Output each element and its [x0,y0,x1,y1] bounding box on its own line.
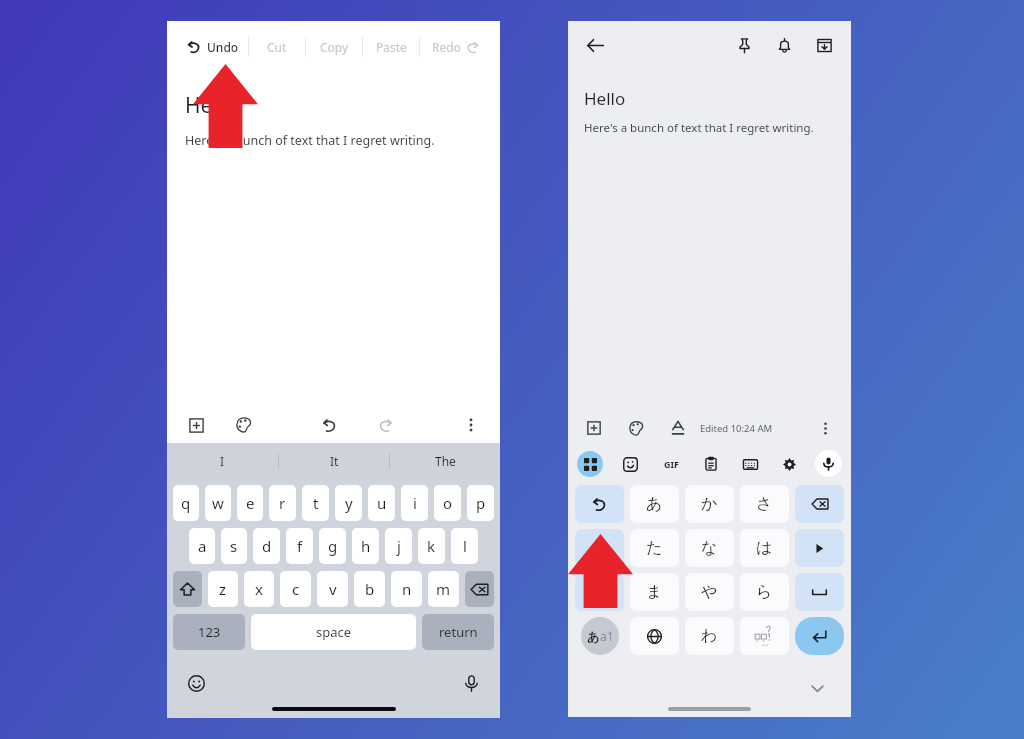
button[interactable] [575,485,624,523]
button[interactable]: GIF [657,450,685,478]
button[interactable]: た [630,529,679,567]
button[interactable]: o [434,485,461,521]
button[interactable]: あ [630,485,679,523]
staticText: さ [756,494,773,514]
staticText: や [701,582,718,602]
button[interactable]: Undo [316,412,342,438]
staticText: Paste [376,39,407,55]
button[interactable]: わ [685,617,734,655]
button[interactable] [630,617,679,655]
button[interactable]: l [451,528,478,564]
button[interactable]: m [428,571,459,607]
button[interactable]: Shift [173,571,202,607]
staticText: p [476,493,486,513]
button[interactable]: More options [813,416,837,440]
button[interactable]: Redo [420,29,490,65]
button[interactable]: a [189,528,215,564]
button[interactable]: t [302,485,329,521]
button[interactable]: s [221,528,247,564]
staticText: r [279,493,286,513]
button[interactable]: Redo [372,412,398,438]
button[interactable]: j [385,528,412,564]
button[interactable]: w [205,485,231,521]
button[interactable] [575,529,624,567]
button[interactable]: x [244,571,274,607]
staticText: た [646,538,663,558]
button[interactable]: c [280,571,311,607]
button[interactable]: v [317,571,348,607]
button[interactable]: 記 [575,573,624,611]
button[interactable] [795,573,844,611]
button[interactable]: Format [666,416,690,440]
staticText: d [262,536,272,556]
button[interactable]: g [319,528,346,564]
button[interactable]: さ [740,485,789,523]
staticText: space [316,623,352,641]
button[interactable]: Copy [306,29,362,65]
button[interactable]: 123 [173,614,245,650]
button[interactable]: Archive [809,30,839,60]
button[interactable]: ら [740,573,789,611]
button[interactable]: y [335,485,362,521]
button[interactable]: I [167,443,278,478]
button[interactable]: Paste [363,29,419,65]
button[interactable]: q [173,485,199,521]
button[interactable]: Pin [729,30,759,60]
button[interactable]: ま [630,573,679,611]
button[interactable]: Background color [624,416,648,440]
button[interactable]: f [286,528,313,564]
staticText: l [463,536,467,556]
button[interactable]: Keyboard layout [737,451,763,477]
button[interactable]: b [354,571,385,607]
staticText: k [427,536,436,556]
button[interactable]: n [391,571,422,607]
staticText: v [329,579,337,599]
button[interactable]: More options [458,412,484,438]
button[interactable]: Enter [795,617,844,655]
button[interactable]: return [422,614,494,650]
button[interactable]: Toolbar [577,451,603,477]
button[interactable]: space [251,614,416,650]
staticText: y [345,493,353,513]
button[interactable]: Clipboard [698,451,724,477]
button[interactable]: d [253,528,280,564]
button[interactable]: Voice input [815,450,842,477]
staticText: h [361,536,371,556]
button[interactable]: か [685,485,734,523]
button[interactable]: な [685,529,734,567]
button[interactable]: あ [581,617,619,655]
button[interactable]: Background color [231,412,257,438]
button[interactable]: や [685,573,734,611]
button[interactable]: Cut [249,29,305,65]
button[interactable] [795,529,844,567]
button[interactable]: It [279,443,389,478]
button[interactable]: Backspace [465,571,494,607]
button[interactable]: Remind me [769,30,799,60]
button[interactable]: p [467,485,494,521]
button[interactable]: h [352,528,379,564]
button[interactable]: Settings [776,451,802,477]
button[interactable]: The [390,443,500,478]
button[interactable]: は [740,529,789,567]
staticText: Hello [584,87,626,110]
button[interactable]: Add [183,412,209,438]
button[interactable]: i [401,485,428,521]
button[interactable]: Dictation [458,670,484,696]
staticText: あ [646,494,663,514]
button[interactable]: Emoji [183,670,209,696]
staticText: Here's a bunch of text that I regret wri… [584,120,814,136]
button[interactable]: Add [582,416,606,440]
button[interactable]: k [418,528,445,564]
button[interactable]: r [269,485,296,521]
button[interactable]: Back [580,30,610,60]
button[interactable]: u [368,485,395,521]
staticText: b [365,579,375,599]
button[interactable]: Hide keyboard [805,676,829,700]
button[interactable]: z [208,571,238,607]
button[interactable]: Undo [177,29,248,65]
button[interactable] [795,485,844,523]
button[interactable]: e [237,485,263,521]
button[interactable]: Stickers [617,451,643,477]
button[interactable] [740,617,789,655]
